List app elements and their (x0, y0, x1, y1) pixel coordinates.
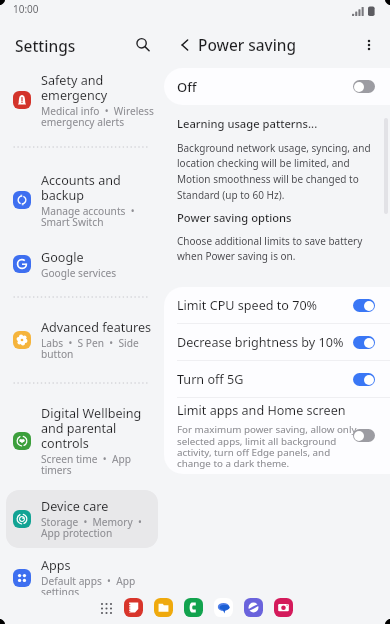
button[interactable]: Safety and emergency (6, 71, 158, 129)
staticText: Accounts and backup (41, 172, 121, 204)
staticText: 10:00 (13, 2, 39, 16)
staticText: Labs • S Pen • Side button (41, 336, 139, 361)
button[interactable]: Messages (214, 598, 233, 617)
button[interactable]: Search (131, 33, 153, 55)
staticText: Learning usage patterns... (177, 116, 318, 131)
staticText: Digital Wellbeing and parental controls (41, 405, 142, 452)
button[interactable]: Power saving toggle (353, 80, 375, 93)
button[interactable]: Limit CPU speed to 70% (353, 299, 375, 312)
staticText: Manage accounts • Smart Switch (41, 204, 135, 229)
button[interactable]: Google (6, 244, 158, 284)
staticText: Apps (41, 557, 71, 574)
button[interactable]: Turn off 5G (353, 373, 375, 386)
button[interactable]: Off (164, 68, 390, 105)
staticText: Limit CPU speed to 70% (177, 297, 318, 314)
button[interactable]: Internet (244, 598, 263, 617)
staticText: Turn off 5G (177, 371, 244, 388)
staticText: Screen time • App timers (41, 452, 131, 477)
button[interactable]: Phone (184, 598, 203, 617)
staticText: Advanced features (41, 319, 152, 336)
staticText: Limit apps and Home screen (177, 402, 346, 419)
staticText: Safety and emergency (41, 72, 108, 104)
button[interactable]: Decrease brightness by 10% (164, 324, 390, 361)
staticText: Medical info • Wireless emergency alerts (41, 104, 154, 129)
staticText: Device care (41, 498, 109, 515)
button[interactable]: Device care (6, 490, 158, 548)
button[interactable]: Samsung Notes (124, 598, 143, 617)
button[interactable]: Turn off 5G (164, 361, 390, 398)
button[interactable]: Digital Wellbeing and parental controls (6, 405, 158, 477)
button[interactable]: Accounts and backup (6, 171, 158, 229)
staticText: Decrease brightness by 10% (177, 334, 344, 351)
button[interactable]: More options (358, 34, 380, 56)
staticText: Power saving (198, 35, 296, 56)
staticText: Choose additional limits to save battery… (177, 234, 363, 263)
staticText: Power saving options (177, 210, 292, 225)
button[interactable]: Camera (274, 598, 293, 617)
button[interactable]: All apps (99, 601, 114, 616)
button[interactable]: Decrease brightness by 10% (353, 336, 375, 349)
button[interactable]: Advanced features (6, 316, 158, 364)
staticText: Background network usage, syncing, and l… (177, 141, 371, 202)
button[interactable]: Limit CPU speed to 70% (164, 287, 390, 324)
staticText: Google (41, 249, 84, 266)
staticText: Storage • Memory • App protection (41, 515, 142, 540)
staticText: Off (177, 78, 197, 96)
button[interactable]: Back (174, 34, 196, 56)
button[interactable]: Limit apps and Home screen (164, 398, 390, 473)
staticText: Default apps • App settings (41, 574, 136, 595)
button[interactable]: Limit apps toggle (353, 429, 375, 442)
button[interactable]: My Files (154, 598, 173, 617)
staticText: Google services (41, 266, 117, 280)
staticText: Settings (15, 35, 76, 56)
button[interactable]: Apps (6, 554, 158, 595)
staticText: For maximum power saving, allow only sel… (177, 423, 357, 470)
